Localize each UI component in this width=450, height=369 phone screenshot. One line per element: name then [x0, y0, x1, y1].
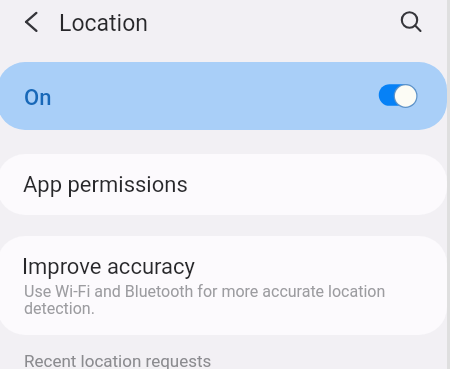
staticText: Improve accuracy [22, 254, 195, 280]
staticText: App permissions [23, 172, 188, 198]
button[interactable]: App permissions [0, 154, 447, 215]
button[interactable]: Location on [369, 76, 421, 110]
button[interactable]: Back [12, 3, 48, 39]
staticText: Recent location requests [24, 351, 212, 369]
button[interactable]: On [0, 62, 447, 130]
button[interactable]: Improve accuracy [0, 236, 447, 335]
button[interactable]: Search [392, 3, 428, 39]
staticText: On [24, 85, 52, 111]
staticText: Location [59, 10, 148, 37]
staticText: Use Wi-Fi and Bluetooth for more accurat… [24, 282, 404, 318]
